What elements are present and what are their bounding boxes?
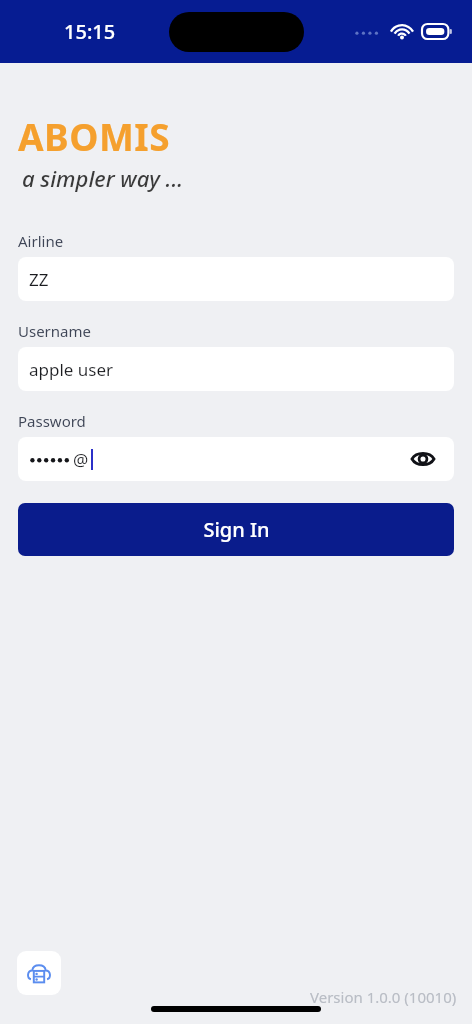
button[interactable]: @	[18, 437, 454, 481]
staticText: a simpler way ...	[22, 163, 184, 193]
staticText: Airline	[18, 231, 64, 251]
staticText: Sign In	[203, 516, 270, 543]
staticText: 15:15	[64, 18, 116, 45]
staticText: Version 1.0.0 (10010)	[310, 987, 457, 1007]
staticText: Username	[18, 321, 91, 341]
staticText: @	[73, 448, 89, 471]
button[interactable]: apple user	[18, 347, 454, 391]
staticText: ABOMIS	[18, 111, 171, 161]
button[interactable]: Sign In	[18, 503, 454, 556]
staticText: apple user	[29, 358, 114, 381]
button[interactable]: Server settings	[17, 951, 61, 995]
staticText: ZZ	[29, 268, 49, 291]
button[interactable]: ZZ	[18, 257, 454, 301]
button[interactable]: Show password	[408, 444, 438, 474]
staticText: Password	[18, 411, 86, 431]
